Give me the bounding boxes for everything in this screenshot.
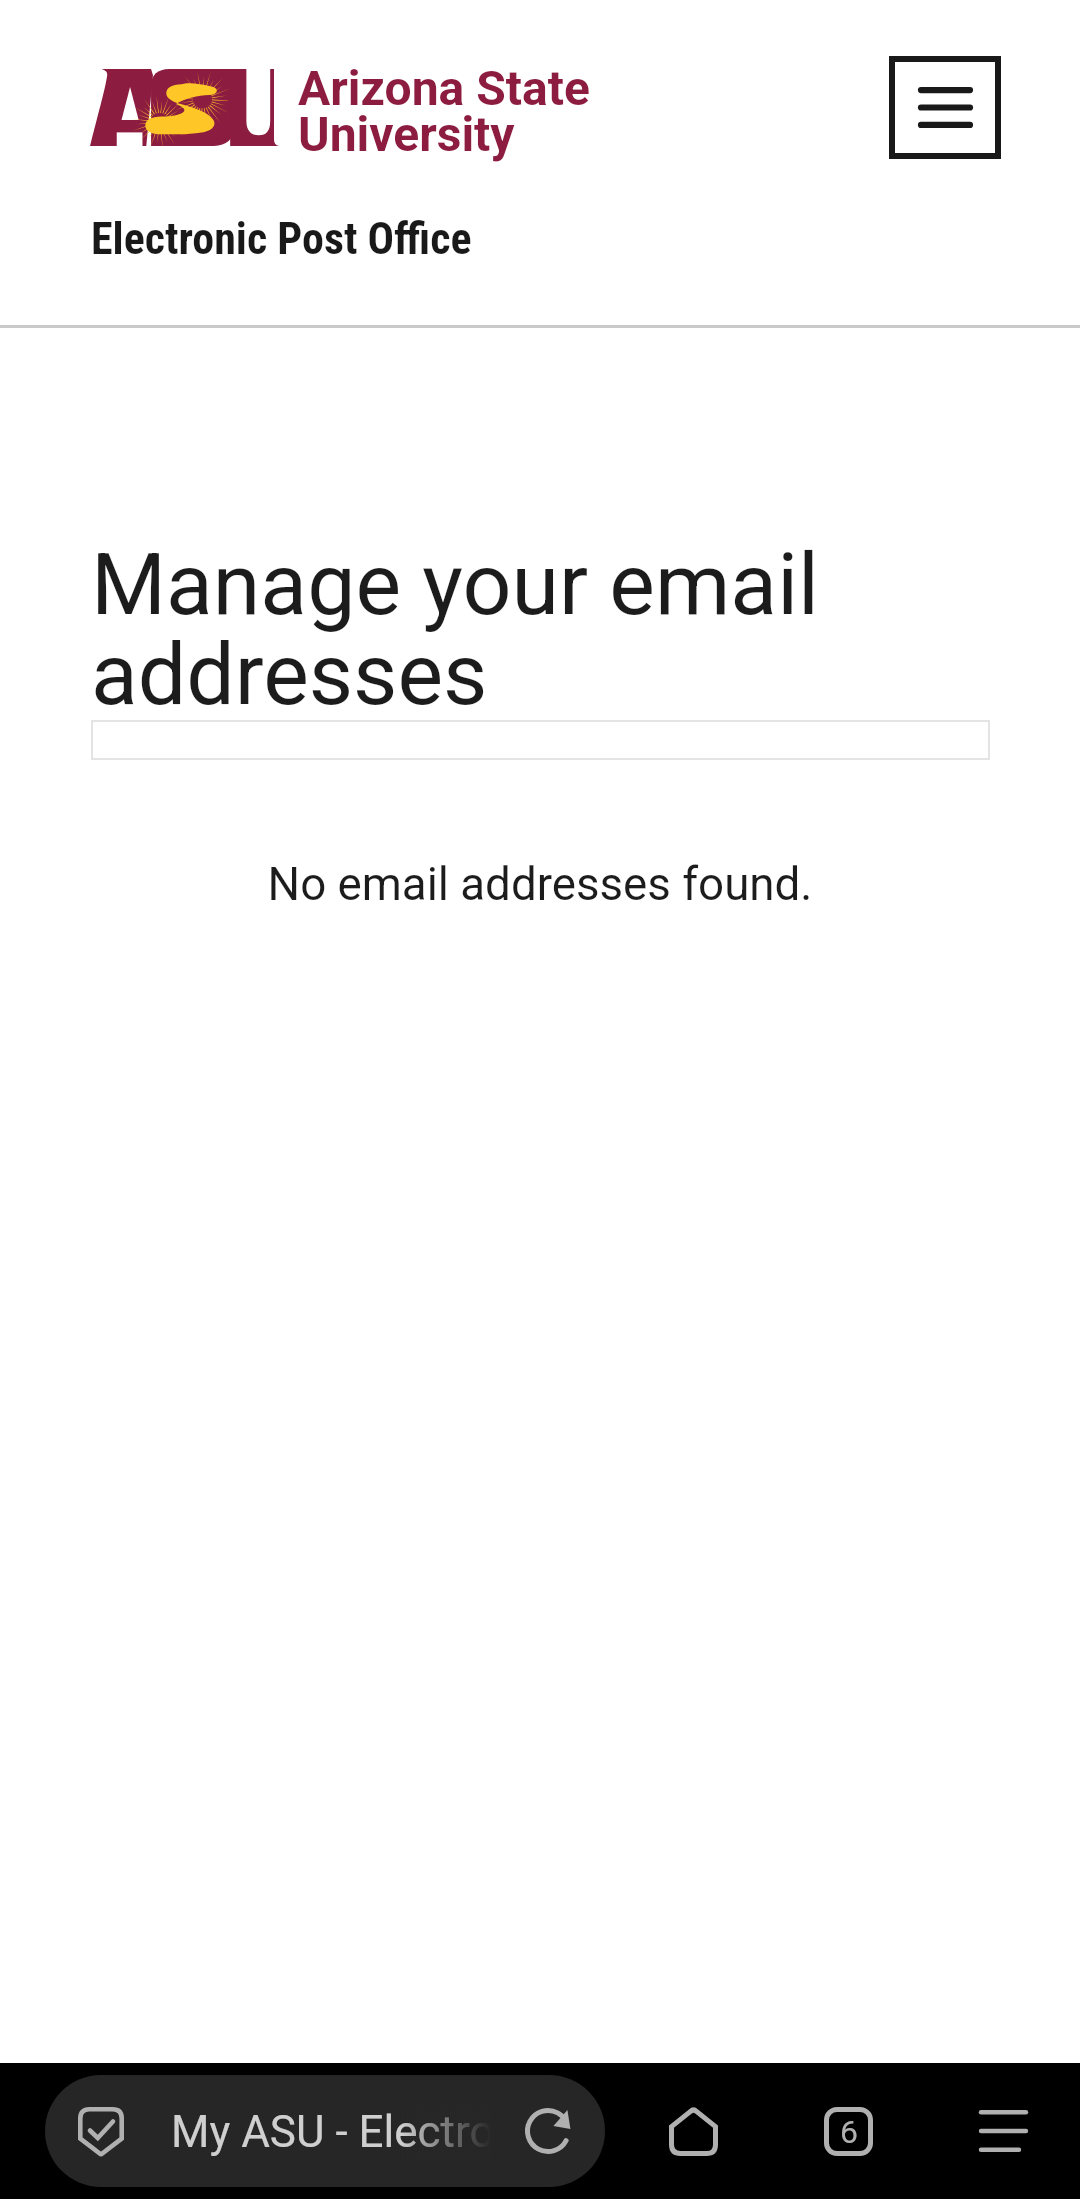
button[interactable]: Arizona State University home bbox=[91, 69, 590, 172]
button[interactable]: Address bar: My ASU - Electronic Post Of… bbox=[45, 2075, 605, 2187]
button[interactable]: Home bbox=[645, 2083, 741, 2179]
button[interactable]: Open navigation menu bbox=[889, 56, 1001, 159]
staticText: No email addresses found. bbox=[0, 858, 1080, 912]
staticText: Manage your email addresses bbox=[91, 534, 881, 725]
staticText: Electronic Post Office bbox=[91, 213, 472, 265]
staticText: Arizona State University bbox=[298, 60, 590, 163]
button[interactable]: Site information bbox=[78, 2107, 124, 2157]
button[interactable]: Tabs, 6 open bbox=[800, 2083, 896, 2179]
button[interactable]: Browser menu bbox=[955, 2083, 1051, 2179]
staticText: 6 bbox=[840, 2113, 858, 2151]
button[interactable]: Reload page bbox=[525, 2108, 571, 2154]
staticText: My ASU - Electronic Post Office bbox=[171, 2106, 491, 2158]
